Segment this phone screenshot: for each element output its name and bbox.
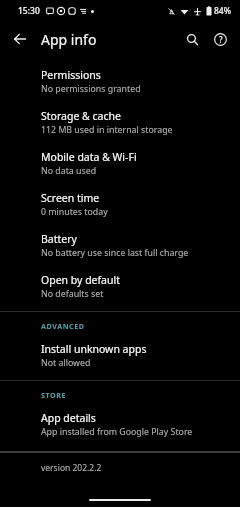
button[interactable]: Storage & cache (0, 102, 240, 143)
staticText: Storage & cache (41, 109, 121, 123)
button[interactable]: Help (206, 25, 234, 53)
staticText: App installed from Google Play Store (41, 426, 193, 438)
staticText: Not allowed (41, 357, 91, 369)
button[interactable]: Search (178, 25, 206, 53)
staticText: ADVANCED (41, 321, 85, 331)
staticText: Mobile data & Wi-Fi (41, 150, 137, 164)
staticText: 15:30 (18, 5, 40, 17)
staticText: 112 MB used in internal storage (41, 124, 173, 136)
button[interactable]: Back (6, 25, 34, 53)
button[interactable]: Screen time (0, 184, 240, 225)
button[interactable]: Permissions (0, 61, 240, 102)
staticText: No data used (41, 165, 97, 177)
staticText: App details (41, 411, 96, 425)
button[interactable]: Open by default (0, 266, 240, 307)
button[interactable]: App details (0, 404, 240, 445)
staticText: Open by default (41, 273, 121, 287)
staticText: Install unknown apps (41, 342, 147, 356)
staticText: 0 minutes today (41, 206, 108, 218)
staticText: Battery (41, 232, 77, 246)
button[interactable]: Battery (0, 225, 240, 266)
staticText: 84% (214, 5, 231, 17)
staticText: version 202.2.2 (41, 462, 102, 474)
staticText: STORE (41, 390, 67, 400)
staticText: ? (219, 34, 223, 45)
button[interactable]: Mobile data & Wi-Fi (0, 143, 240, 184)
staticText: No defaults set (41, 288, 104, 300)
staticText: App info (41, 30, 97, 49)
staticText: Permissions (41, 68, 101, 82)
staticText: No battery use since last full charge (41, 247, 189, 259)
button[interactable]: Install unknown apps (0, 335, 240, 376)
staticText: Screen time (41, 191, 100, 205)
staticText: No permissions granted (41, 83, 141, 95)
